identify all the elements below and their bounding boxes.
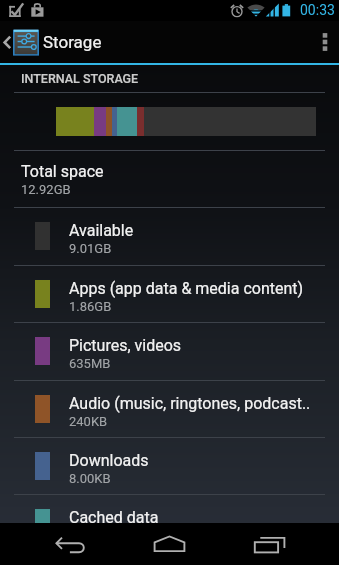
staticText: INTERNAL STORAGE	[21, 71, 139, 86]
staticText: Pictures, videos	[69, 336, 182, 355]
staticText: 8.00KB	[69, 471, 111, 486]
staticText: Downloads	[69, 451, 149, 470]
button[interactable]: Recent apps	[240, 523, 300, 565]
staticText: 240KB	[69, 414, 108, 429]
staticText: 9.01GB	[69, 241, 112, 256]
staticText: Available	[69, 221, 134, 240]
button[interactable]: Total space	[0, 150, 339, 207]
staticText: 12.92GB	[21, 182, 71, 197]
button[interactable]: Available	[0, 207, 339, 264]
button[interactable]: Downloads	[0, 437, 339, 494]
button[interactable]: Cached data	[0, 494, 339, 551]
staticText: 635MB	[69, 356, 111, 371]
button[interactable]: More options	[311, 21, 339, 63]
staticText: Cached data	[69, 508, 159, 527]
staticText: 00:33	[300, 2, 335, 18]
staticText: Apps (app data & media content)	[69, 279, 304, 298]
button[interactable]: Apps (app data & media content)	[0, 265, 339, 322]
staticText: Audio (music, ringtones, podcast..	[69, 394, 311, 413]
button[interactable]: Audio (music, ringtones, podcast..	[0, 380, 339, 437]
button[interactable]: Pictures, videos	[0, 322, 339, 379]
button[interactable]: Back	[41, 523, 101, 565]
staticText: Storage	[43, 32, 102, 52]
button[interactable]: Navigate up	[0, 21, 102, 63]
button[interactable]: Home	[139, 523, 200, 565]
staticText: 1.86GB	[69, 299, 112, 314]
staticText: Total space	[21, 162, 104, 181]
